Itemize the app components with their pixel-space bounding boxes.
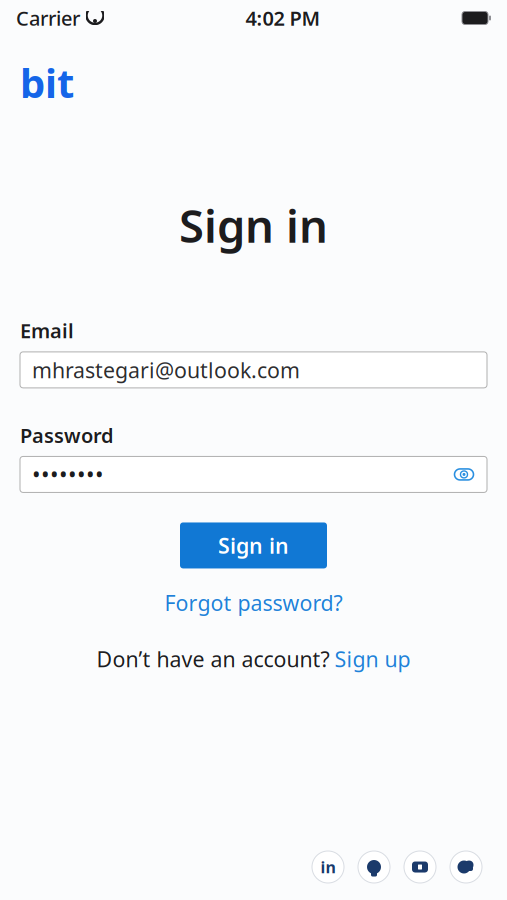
staticText: 4:02 PM xyxy=(245,5,320,31)
staticText: Email xyxy=(20,317,74,344)
button[interactable]: Show password xyxy=(449,459,479,489)
staticText: mhrastegari@outlook.com xyxy=(32,356,300,384)
staticText: bit xyxy=(20,56,74,109)
button[interactable]: Sign up xyxy=(334,645,410,673)
staticText: Carrier xyxy=(16,5,80,31)
button[interactable]: LinkedIn xyxy=(311,850,345,884)
staticText: Don’t have an account? xyxy=(96,645,329,673)
staticText: Forgot password? xyxy=(164,588,342,617)
button[interactable]: Twitter xyxy=(449,850,483,884)
button[interactable]: GitHub xyxy=(357,850,391,884)
staticText: Sign in xyxy=(218,531,289,560)
staticText: •••••••• xyxy=(32,459,104,489)
staticText: Sign in xyxy=(179,195,328,255)
staticText: Sign up xyxy=(334,645,410,673)
button[interactable]: Sign in xyxy=(180,522,327,568)
button[interactable]: Forgot password? xyxy=(154,582,352,623)
button[interactable]: YouTube xyxy=(403,850,437,884)
staticText: Password xyxy=(20,422,114,448)
staticText: in xyxy=(320,856,335,878)
